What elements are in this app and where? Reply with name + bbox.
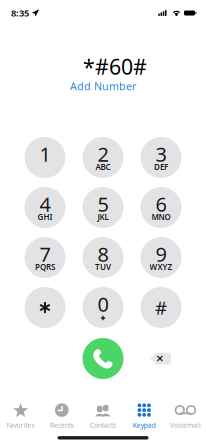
button[interactable]: Call: [82, 338, 123, 379]
staticText: ABC: [95, 162, 110, 172]
staticText: 0: [97, 291, 108, 317]
staticText: Favorites: [7, 421, 35, 430]
button[interactable]: 6: [140, 187, 181, 228]
button[interactable]: Voicemail: [165, 403, 206, 428]
staticText: Recents: [50, 421, 74, 430]
button[interactable]: Keypad: [124, 403, 165, 428]
staticText: 9: [155, 241, 166, 267]
button[interactable]: Star: [24, 287, 65, 328]
button[interactable]: Contacts: [82, 403, 124, 428]
button[interactable]: 1: [24, 137, 65, 178]
staticText: #: [155, 295, 167, 320]
button[interactable]: 5: [82, 187, 123, 228]
staticText: WXYZ: [149, 262, 172, 272]
staticText: GHI: [37, 212, 52, 222]
button[interactable]: Favorites: [0, 403, 41, 428]
button[interactable]: 0: [82, 287, 123, 328]
button[interactable]: 2: [82, 137, 123, 178]
staticText: 5: [97, 191, 108, 217]
button[interactable]: 8: [82, 237, 123, 278]
button[interactable]: Pound: [140, 287, 181, 328]
staticText: 8: [97, 241, 108, 267]
staticText: 8:35: [11, 7, 29, 19]
staticText: MNO: [151, 212, 170, 222]
staticText: DEF: [154, 162, 168, 172]
staticText: 1: [39, 141, 50, 167]
staticText: PQRS: [35, 262, 55, 272]
staticText: 2: [97, 141, 108, 167]
staticText: JKL: [97, 212, 108, 222]
staticText: 3: [155, 141, 166, 167]
staticText: Add Number: [70, 79, 136, 93]
staticText: TUV: [95, 262, 111, 272]
button[interactable]: 4: [24, 187, 65, 228]
button[interactable]: 3: [140, 137, 181, 178]
staticText: Contacts: [90, 421, 116, 430]
button[interactable]: Add Number: [70, 81, 136, 91]
staticText: Voicemail: [170, 421, 201, 430]
staticText: 6: [155, 191, 166, 217]
staticText: *#60#: [83, 52, 147, 81]
button[interactable]: Recents: [41, 403, 82, 428]
staticText: 4: [39, 191, 50, 217]
button[interactable]: 9: [140, 237, 181, 278]
staticText: 7: [39, 241, 50, 267]
button[interactable]: 7: [24, 237, 65, 278]
button[interactable]: Delete: [140, 338, 181, 379]
staticText: Keypad: [133, 421, 156, 430]
